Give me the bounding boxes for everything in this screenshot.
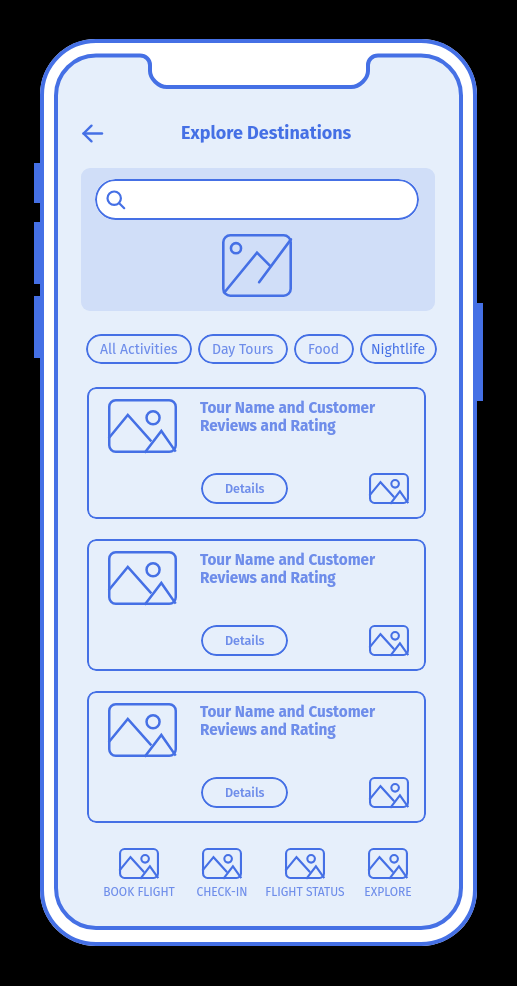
- button[interactable]: Tour Name and Customer Reviews and Ratin…: [87, 539, 426, 671]
- staticText: Day Tours: [212, 341, 274, 358]
- button[interactable]: Details: [201, 473, 288, 504]
- staticText: Explore Destinations: [181, 122, 352, 144]
- staticText: Details: [225, 633, 265, 648]
- staticText: CHECK-IN: [196, 885, 248, 899]
- button[interactable]: BOOK FLIGHT: [97, 848, 180, 899]
- staticText: BOOK FLIGHT: [103, 885, 175, 899]
- staticText: FLIGHT STATUS: [265, 885, 345, 899]
- staticText: Food: [308, 341, 340, 358]
- staticText: Tour Name and Customer Reviews and Ratin…: [200, 703, 376, 739]
- button[interactable]: CHECK-IN: [180, 848, 263, 899]
- button[interactable]: Details: [201, 625, 288, 656]
- staticText: Details: [225, 785, 265, 800]
- staticText: Nightlife: [371, 341, 426, 358]
- button[interactable]: All Activities: [86, 334, 192, 364]
- button[interactable]: EXPLORE: [346, 848, 429, 899]
- button[interactable]: Details: [201, 777, 288, 808]
- staticText: Tour Name and Customer Reviews and Ratin…: [200, 551, 376, 587]
- staticText: EXPLORE: [364, 885, 412, 899]
- button[interactable]: Back: [73, 113, 113, 153]
- button[interactable]: Food: [294, 334, 354, 364]
- button[interactable]: Day Tours: [198, 334, 288, 364]
- button[interactable]: Tour Name and Customer Reviews and Ratin…: [87, 387, 426, 519]
- button[interactable]: FLIGHT STATUS: [263, 848, 346, 899]
- staticText: All Activities: [100, 341, 178, 358]
- button[interactable]: Search: [95, 179, 419, 220]
- button[interactable]: Tour Name and Customer Reviews and Ratin…: [87, 691, 426, 823]
- button[interactable]: Nightlife: [360, 334, 437, 364]
- staticText: Tour Name and Customer Reviews and Ratin…: [200, 399, 376, 435]
- staticText: Details: [225, 481, 265, 496]
